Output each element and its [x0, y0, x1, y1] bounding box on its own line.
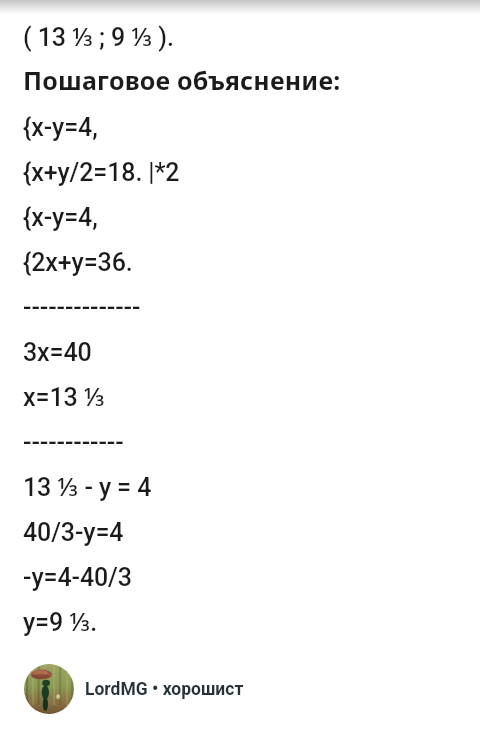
- staticText: ( 13 ⅓ ; 9 ⅓ ). Пошаговое объяснение: {x…: [23, 19, 341, 638]
- button[interactable]: LordMG • хорошист: [24, 664, 480, 714]
- staticText: LordMG • хорошист: [85, 679, 244, 700]
